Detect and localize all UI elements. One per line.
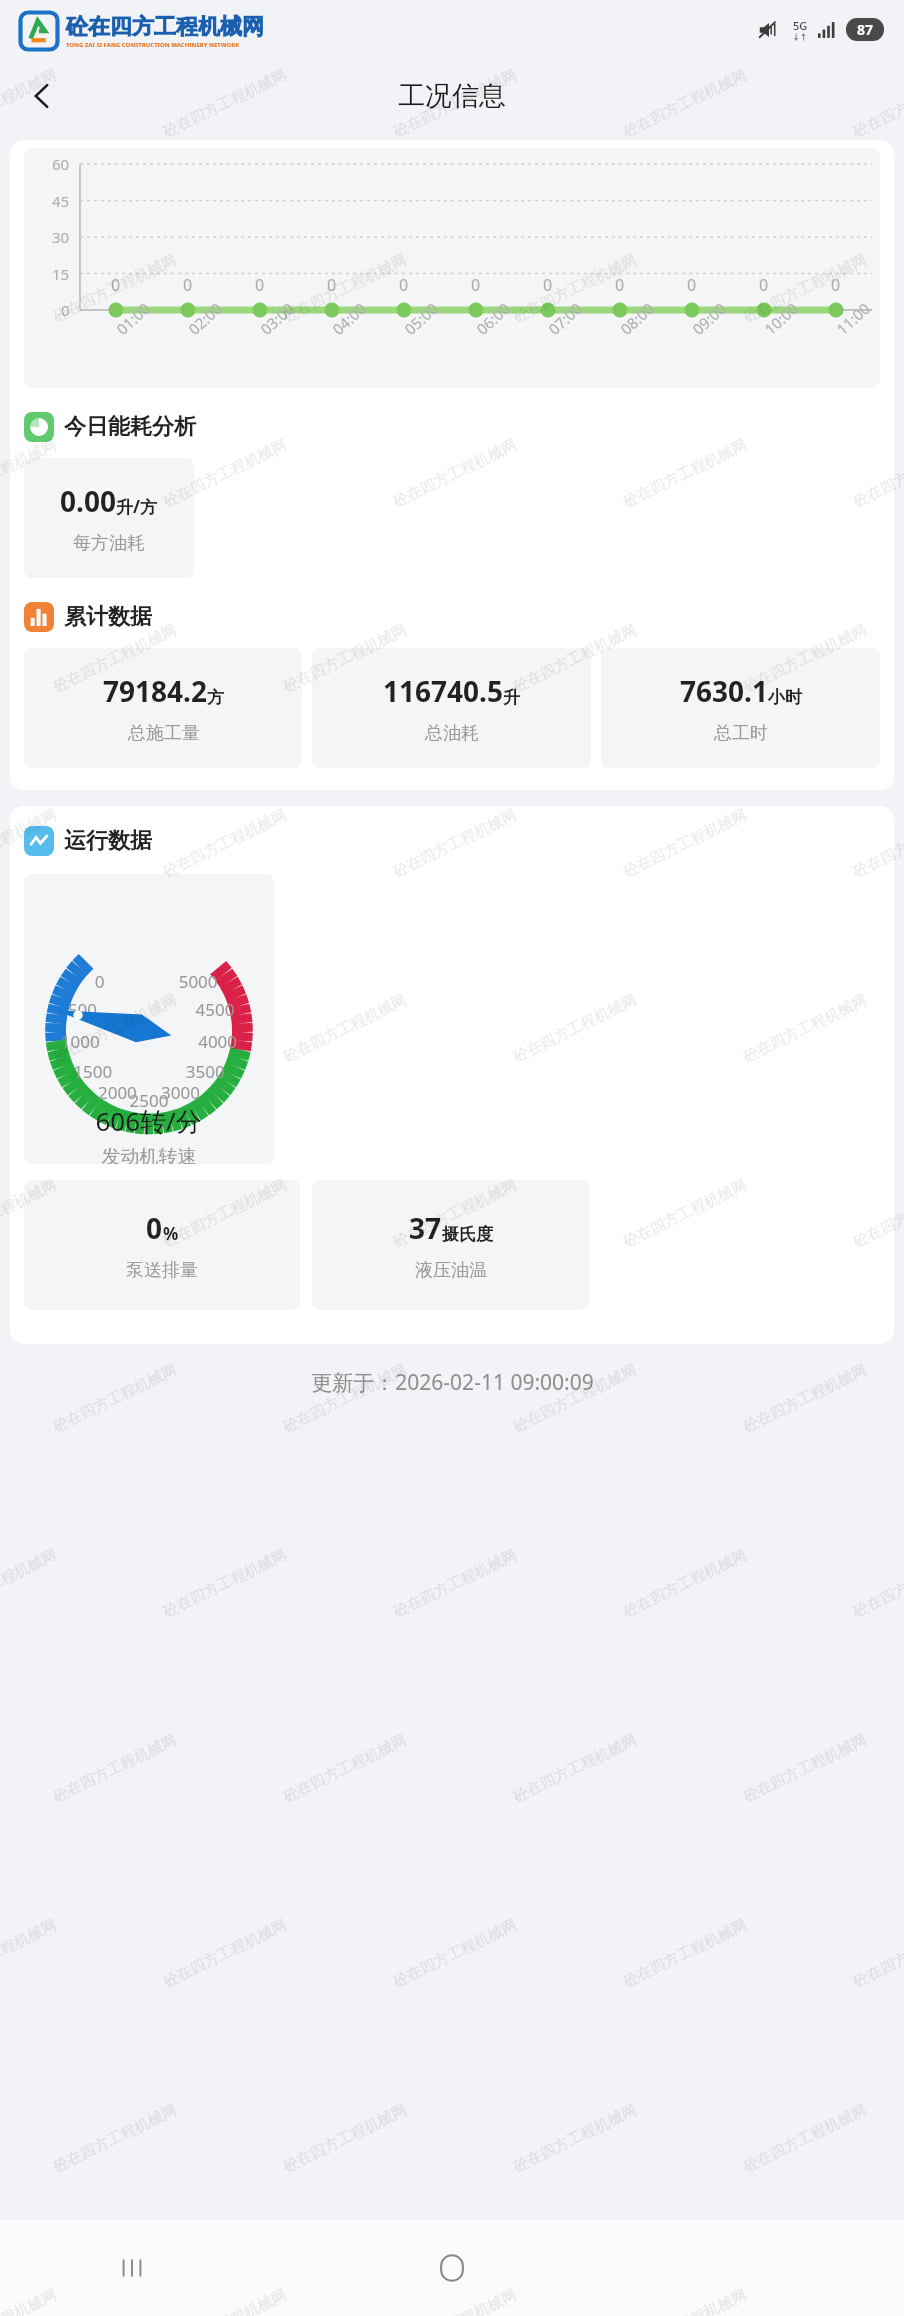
button[interactable]: 主屏幕 [416, 2232, 488, 2304]
staticText: 5G [793, 18, 808, 33]
button[interactable]: 79184.2 [24, 648, 302, 768]
staticText: 升/方 [116, 495, 158, 518]
button[interactable]: 累计数据 [24, 602, 152, 632]
staticText: 总施工量 [128, 722, 200, 745]
button[interactable]: 116740.5 [312, 648, 591, 768]
staticText: 更新于：2026-02-11 09:00:09 [311, 1368, 594, 1397]
staticText: 小时 [768, 687, 802, 708]
staticText: 总工时 [714, 722, 768, 745]
staticText: 方 [207, 687, 224, 708]
staticText: 工况信息 [398, 79, 506, 113]
staticText: TONG ZAI SI FANG CONSTRUCTION MACHINERY … [66, 41, 240, 49]
staticText: 0 [146, 1209, 163, 1247]
staticText: 116740.5 [383, 672, 503, 710]
button[interactable]: 返回 [14, 68, 70, 124]
button[interactable]: 今日能耗分析 [24, 412, 196, 442]
staticText: 79184.2 [103, 672, 207, 710]
staticText: 0.00 [60, 482, 116, 520]
staticText: 87 [857, 20, 874, 39]
button[interactable]: 0.00 [24, 458, 194, 578]
staticText: 每方油耗 [73, 532, 145, 555]
button[interactable]: 运行数据 [24, 826, 152, 856]
button[interactable]: 0 [24, 1180, 300, 1310]
staticText: 摄氏度 [442, 1224, 493, 1245]
staticText: 升 [503, 687, 520, 708]
staticText: % [163, 1222, 179, 1245]
staticText: 累计数据 [64, 603, 152, 631]
staticText: 37 [409, 1209, 442, 1247]
staticText: 运行数据 [64, 827, 152, 855]
staticText: 液压油温 [415, 1259, 487, 1282]
staticText: 砼在四方工程机械网 [66, 13, 264, 41]
staticText: 总油耗 [425, 722, 479, 745]
staticText: 泵送排量 [126, 1259, 198, 1282]
staticText: 7630.1 [680, 672, 768, 710]
button[interactable]: 7630.1 [601, 648, 880, 768]
staticText: 今日能耗分析 [64, 413, 196, 441]
button[interactable]: 37 [312, 1180, 589, 1310]
button[interactable]: 最近任务 [96, 2232, 168, 2304]
